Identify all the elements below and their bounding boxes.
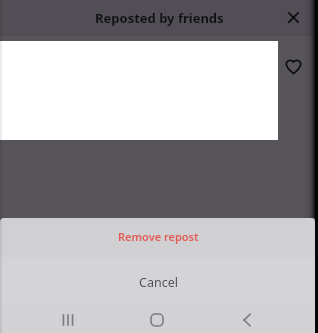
button[interactable]: Back bbox=[230, 303, 264, 333]
button[interactable]: Close bbox=[281, 5, 306, 30]
staticText: Remove repost bbox=[118, 229, 199, 244]
button[interactable]: Recent apps bbox=[51, 303, 85, 333]
button[interactable]: Cancel bbox=[0, 257, 315, 304]
button[interactable]: Remove repost bbox=[0, 218, 315, 257]
button[interactable]: Home bbox=[140, 303, 174, 333]
staticText: Reposted by friends bbox=[95, 9, 224, 27]
staticText: Cancel bbox=[139, 274, 178, 291]
button[interactable]: Like bbox=[281, 54, 305, 78]
